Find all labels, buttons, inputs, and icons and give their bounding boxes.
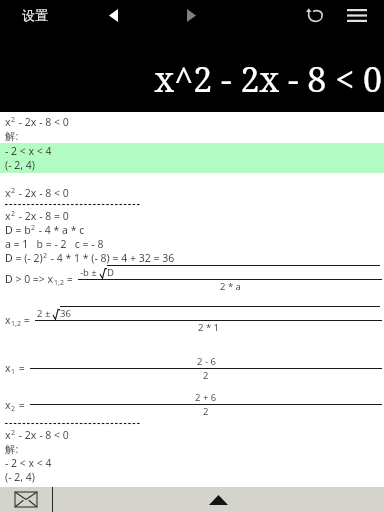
- staticText: =: [21, 313, 33, 327]
- staticText: - 2x - 8 < 0: [16, 115, 69, 129]
- staticText: 2: [31, 223, 36, 233]
- button[interactable]: Undo: [296, 0, 332, 30]
- staticText: - 2 < x < 4: [5, 144, 52, 158]
- staticText: 2: [11, 186, 16, 196]
- staticText: 解:: [5, 442, 19, 456]
- staticText: 1,2: [11, 319, 21, 329]
- staticText: - 2 < x < 4: [5, 456, 52, 470]
- staticText: - 2x - 8 < 0: [16, 428, 69, 442]
- button[interactable]: Expand: [53, 487, 384, 512]
- staticText: 解:: [5, 129, 19, 143]
- staticText: 2 * a: [220, 280, 241, 293]
- button[interactable]: Next: [174, 0, 208, 30]
- staticText: 2: [11, 115, 16, 125]
- staticText: =: [16, 398, 28, 412]
- button[interactable]: Mail: [0, 487, 52, 512]
- staticText: x: [5, 313, 11, 327]
- staticText: 36: [60, 307, 71, 320]
- staticText: - 4 * a * c: [36, 223, 85, 237]
- staticText: 2: [203, 369, 209, 382]
- button[interactable]: Menu: [338, 0, 376, 30]
- staticText: 2: [203, 405, 209, 418]
- staticText: x: [5, 398, 11, 412]
- staticText: - 4 * 1 * (- 8) = 4 + 32 = 36: [48, 251, 175, 265]
- staticText: 2: [43, 251, 48, 261]
- staticText: 2: [11, 209, 16, 219]
- staticText: 1,2: [54, 278, 64, 288]
- button[interactable]: Previous: [96, 0, 130, 30]
- staticText: D > 0 => x: [5, 272, 54, 286]
- staticText: - 2x - 8 = 0: [16, 209, 69, 223]
- staticText: x: [5, 209, 11, 223]
- staticText: x: [5, 115, 11, 129]
- staticText: 2 ±: [37, 307, 53, 320]
- staticText: x^2 - 2x - 8 < 0: [154, 56, 382, 102]
- staticText: 1: [11, 367, 16, 377]
- staticText: 2: [11, 428, 16, 438]
- staticText: 2: [11, 404, 16, 414]
- staticText: a = 1 b = - 2 c = - 8: [5, 237, 104, 251]
- staticText: x: [5, 186, 11, 200]
- staticText: 2 - 6: [197, 355, 216, 368]
- staticText: 2 * 1: [198, 321, 220, 334]
- staticText: -b ±: [80, 266, 100, 279]
- staticText: (- 2, 4): [5, 470, 35, 484]
- staticText: =: [64, 272, 76, 286]
- staticText: - 2x - 8 < 0: [16, 186, 69, 200]
- staticText: 设置: [22, 7, 48, 23]
- staticText: D = b: [5, 223, 31, 237]
- staticText: =: [16, 361, 28, 375]
- staticText: (- 2, 4): [5, 158, 35, 172]
- staticText: D = (- 2): [5, 251, 43, 265]
- staticText: 2 + 6: [195, 391, 217, 404]
- staticText: x: [5, 361, 11, 375]
- staticText: x: [5, 428, 11, 442]
- button[interactable]: 设置: [22, 7, 48, 23]
- staticText: D: [107, 266, 114, 279]
